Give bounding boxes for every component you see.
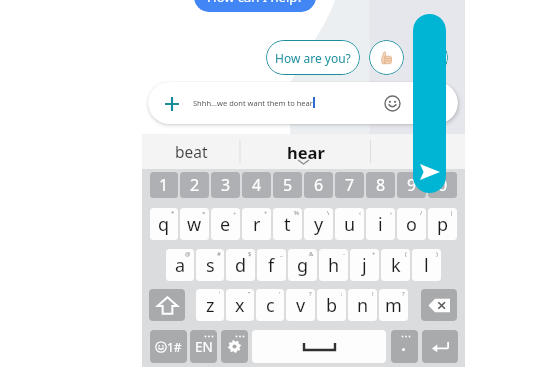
staticText: ) xyxy=(436,250,438,258)
button[interactable]: Period xyxy=(391,330,418,363)
button[interactable]: How are you? xyxy=(266,40,360,75)
button[interactable]: k xyxy=(381,249,410,281)
staticText: f xyxy=(268,253,275,278)
staticText: 4 xyxy=(252,174,262,196)
button[interactable]: f xyxy=(257,249,286,281)
other: Emoji xyxy=(384,95,401,112)
staticText: l xyxy=(424,253,429,278)
staticText: \ xyxy=(327,209,330,217)
button[interactable]: v xyxy=(286,289,315,321)
button[interactable]: w xyxy=(180,208,209,240)
staticText: p xyxy=(437,212,449,237)
staticText: % xyxy=(294,209,299,217)
button[interactable]: 6 xyxy=(304,172,333,198)
button[interactable]: Thumbs up xyxy=(369,40,404,75)
button[interactable]: 8 xyxy=(366,172,395,198)
staticText: w xyxy=(187,212,202,237)
staticText: ✋ xyxy=(410,144,427,159)
staticText: + xyxy=(372,250,376,258)
button[interactable]: 3 xyxy=(211,172,240,198)
button[interactable]: r xyxy=(242,208,271,240)
button[interactable]: Space xyxy=(252,330,386,363)
staticText: How are you? xyxy=(275,50,351,66)
button[interactable]: 9 xyxy=(397,172,426,198)
button[interactable]: g xyxy=(288,249,317,281)
staticText: 0 xyxy=(438,174,448,196)
staticText: + xyxy=(264,209,268,217)
button[interactable]: p xyxy=(428,208,457,240)
staticText: ; xyxy=(341,290,343,298)
button[interactable]: Emoji reply xyxy=(413,40,448,75)
staticText: 9 xyxy=(407,174,417,196)
staticText: z xyxy=(206,293,215,318)
button[interactable]: u xyxy=(335,208,364,240)
button[interactable]: 5 xyxy=(273,172,302,198)
staticText: ” xyxy=(248,290,251,298)
staticText: 8 xyxy=(376,174,386,196)
staticText: c xyxy=(266,293,275,318)
staticText: 6 xyxy=(314,174,324,196)
button[interactable]: s xyxy=(196,249,224,281)
button[interactable]: Add attachment xyxy=(148,82,458,124)
staticText: r xyxy=(253,212,261,237)
staticText: k xyxy=(391,253,401,278)
button[interactable]: 4 xyxy=(242,172,271,198)
button[interactable]: Enter xyxy=(422,330,458,363)
button[interactable]: 1# xyxy=(150,330,187,363)
staticText: u xyxy=(344,212,356,237)
staticText: # xyxy=(217,250,221,258)
staticText: - xyxy=(343,250,345,258)
staticText: s xyxy=(206,253,215,278)
button[interactable]: EN xyxy=(190,330,217,363)
staticText: How can I help? xyxy=(207,0,303,6)
button[interactable]: c xyxy=(256,289,284,321)
button[interactable]: Backspace xyxy=(421,289,457,321)
button[interactable]: x xyxy=(226,289,254,321)
button[interactable]: z xyxy=(196,289,224,321)
button[interactable]: l xyxy=(412,249,441,281)
button[interactable]: m xyxy=(379,289,408,321)
button[interactable]: n xyxy=(348,289,377,321)
button[interactable]: hear xyxy=(240,134,371,169)
button[interactable]: h xyxy=(319,249,348,281)
button[interactable]: 2 xyxy=(180,172,209,198)
button[interactable]: 7 xyxy=(335,172,364,198)
button[interactable]: 0 xyxy=(428,172,457,198)
staticText: 1 xyxy=(159,174,169,196)
staticText: 3 xyxy=(221,174,231,196)
button[interactable]: How can I help? xyxy=(194,0,316,12)
button[interactable]: a xyxy=(166,249,194,281)
staticText: t xyxy=(284,212,291,237)
button[interactable]: e xyxy=(211,208,240,240)
staticText: _ xyxy=(280,250,283,258)
staticText: o xyxy=(406,212,417,237)
staticText: e xyxy=(220,212,231,237)
staticText: ! xyxy=(372,290,374,298)
staticText: ‹ xyxy=(359,209,361,217)
button[interactable]: q xyxy=(150,208,178,240)
button[interactable]: ✋ xyxy=(371,134,466,169)
button[interactable]: Shift xyxy=(149,289,185,321)
button[interactable]: b xyxy=(317,289,346,321)
button[interactable]: beat xyxy=(142,134,240,169)
button[interactable]: j xyxy=(350,249,379,281)
button[interactable]: 1 xyxy=(150,172,178,198)
staticText: a xyxy=(175,253,186,278)
staticText: ? xyxy=(402,290,405,298)
button[interactable]: Settings xyxy=(221,330,248,363)
staticText: j xyxy=(362,253,367,278)
button[interactable]: i xyxy=(366,208,395,240)
button[interactable]: d xyxy=(226,249,255,281)
button[interactable]: t xyxy=(273,208,302,240)
staticText: h xyxy=(328,253,340,278)
staticText: q xyxy=(158,212,170,237)
staticText: $ xyxy=(248,250,252,258)
staticText: › xyxy=(390,209,392,217)
button[interactable]: o xyxy=(397,208,426,240)
staticText: beat xyxy=(175,141,208,162)
staticText: hear xyxy=(287,141,325,163)
button[interactable]: y xyxy=(304,208,333,240)
button[interactable]: Send xyxy=(413,14,446,193)
staticText: × xyxy=(202,209,206,217)
staticText: y xyxy=(314,212,324,237)
